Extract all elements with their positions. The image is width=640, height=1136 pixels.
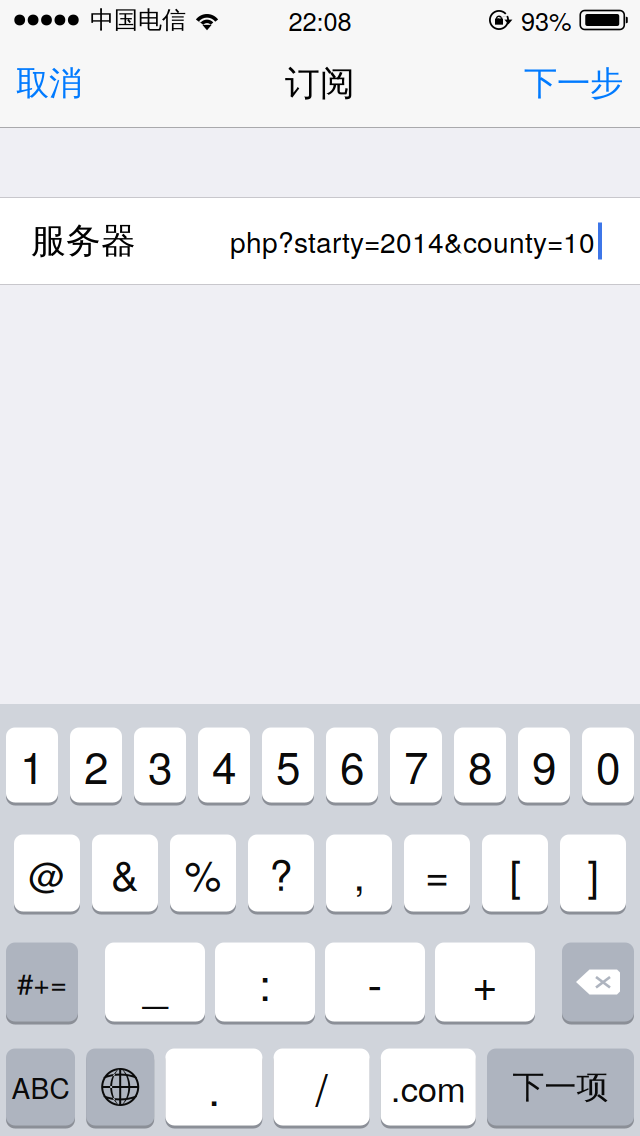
- button[interactable]: ]: [560, 834, 626, 914]
- staticText: -: [367, 950, 382, 1013]
- button[interactable]: ,: [326, 834, 392, 914]
- staticText: [: [509, 843, 520, 903]
- staticText: =: [425, 843, 449, 903]
- staticText: %: [184, 843, 221, 903]
- staticText: 0: [596, 733, 620, 796]
- button[interactable]: 下一步: [507, 40, 640, 127]
- button[interactable]: _: [105, 942, 205, 1024]
- staticText: ABC: [11, 1067, 69, 1107]
- staticText: +: [472, 950, 498, 1013]
- button[interactable]: 4: [198, 727, 250, 805]
- button[interactable]: .com: [381, 1048, 476, 1128]
- button[interactable]: ?: [248, 834, 314, 914]
- button[interactable]: &: [92, 834, 158, 914]
- button[interactable]: 6: [326, 727, 378, 805]
- staticText: ]: [587, 843, 598, 903]
- staticText: /: [316, 1055, 328, 1118]
- staticText: 93%: [521, 2, 572, 38]
- button[interactable]: ABC: [6, 1048, 75, 1128]
- staticText: http://www.example.com/api/subscribe.php…: [0, 221, 595, 261]
- button[interactable]: 3: [134, 727, 186, 805]
- button[interactable]: [: [482, 834, 548, 914]
- staticText: .com: [391, 1062, 466, 1112]
- button[interactable]: -: [325, 942, 425, 1024]
- staticText: 服务器: [31, 219, 136, 263]
- staticText: 3: [148, 733, 172, 796]
- button[interactable]: 7: [390, 727, 442, 805]
- button[interactable]: 9: [518, 727, 570, 805]
- staticText: 5: [276, 733, 300, 796]
- button[interactable]: 8: [454, 727, 506, 805]
- staticText: 6: [340, 733, 364, 796]
- staticText: 7: [404, 733, 428, 796]
- staticText: 取消: [16, 62, 82, 104]
- button[interactable]: 0: [582, 727, 634, 805]
- button[interactable]: 下一项: [487, 1048, 634, 1128]
- staticText: &: [111, 843, 139, 903]
- button[interactable]: .: [165, 1048, 262, 1128]
- button[interactable]: %: [170, 834, 236, 914]
- staticText: 下一步: [524, 62, 623, 104]
- staticText: ,: [353, 843, 364, 903]
- button[interactable]: @: [14, 834, 80, 914]
- button[interactable]: :: [215, 942, 315, 1024]
- button[interactable]: /: [274, 1048, 370, 1128]
- staticText: 2: [84, 733, 108, 796]
- staticText: #+=: [17, 961, 67, 1003]
- staticText: _: [143, 950, 167, 1013]
- staticText: :: [259, 950, 271, 1013]
- staticText: 9: [532, 733, 556, 796]
- button[interactable]: 1: [6, 727, 58, 805]
- staticText: 4: [212, 733, 236, 796]
- staticText: 1: [20, 733, 44, 796]
- button[interactable]: Delete: [562, 942, 634, 1024]
- button[interactable]: =: [404, 834, 470, 914]
- staticText: 22:08: [288, 2, 351, 38]
- button[interactable]: Next keyboard: [86, 1048, 154, 1128]
- staticText: 下一项: [512, 1067, 608, 1107]
- staticText: 中国电信: [90, 5, 186, 35]
- button[interactable]: +: [435, 942, 535, 1024]
- button[interactable]: 取消: [0, 40, 98, 127]
- staticText: 订阅: [285, 62, 355, 105]
- staticText: ?: [269, 843, 292, 903]
- staticText: .: [208, 1055, 220, 1118]
- button[interactable]: 5: [262, 727, 314, 805]
- staticText: @: [28, 847, 65, 899]
- button[interactable]: 2: [70, 727, 122, 805]
- button[interactable]: #+=: [6, 942, 78, 1024]
- staticText: 8: [468, 733, 492, 796]
